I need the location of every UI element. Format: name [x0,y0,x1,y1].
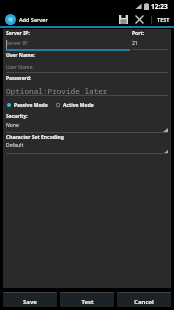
button[interactable]: Passive Mode [5,100,48,110]
button[interactable]: Active Mode [54,100,94,110]
staticText: Passive Mode [14,102,48,109]
button[interactable] [6,147,168,154]
staticText: User Name: [6,52,36,59]
staticText: Active Mode [63,102,94,109]
button[interactable]: Close [131,13,148,26]
staticText: None [6,122,19,129]
staticText: Save [23,298,37,306]
staticText: Add Server [19,16,48,23]
button[interactable]: Save [3,292,57,307]
button[interactable]: Test [60,292,114,307]
staticText: 21 [132,40,138,47]
staticText: Cancel [134,298,154,306]
button[interactable] [6,125,168,132]
staticText: Test [81,298,94,306]
staticText: 12:23 [151,2,168,11]
staticText: Server IP: [6,30,30,37]
button[interactable]: TEST [152,13,174,26]
button[interactable]: Save [115,13,131,26]
staticText: Security: [6,113,28,120]
staticText: Port: [132,30,145,37]
staticText: TEST [157,16,170,23]
staticText: Password: [6,75,32,82]
button[interactable]: Cancel [117,292,171,307]
staticText: Server IP: [6,40,29,47]
staticText: Character Set Encoding [6,134,64,141]
staticText: Optional:Provide later [6,86,108,96]
staticText: Default [6,142,24,149]
staticText: User Name: [6,64,34,71]
